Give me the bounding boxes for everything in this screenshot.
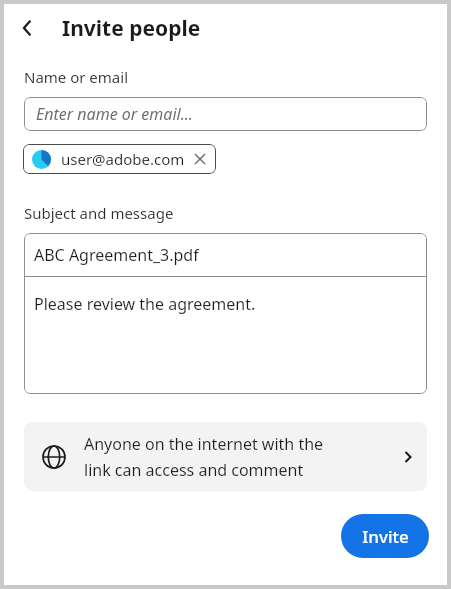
staticText: Enter name or email... bbox=[36, 103, 193, 125]
button[interactable]: Please review the agreement. bbox=[24, 277, 427, 394]
staticText: Invite bbox=[362, 525, 409, 548]
button[interactable]: user@adobe.com bbox=[23, 144, 216, 174]
button[interactable]: Back bbox=[10, 11, 44, 45]
button[interactable]: Enter name or email... bbox=[24, 97, 427, 131]
staticText: Anyone on the internet with the bbox=[84, 433, 324, 455]
button[interactable]: Anyone on the internet with the bbox=[24, 422, 427, 491]
button[interactable]: Invite bbox=[341, 514, 429, 558]
staticText: ABC Agreement_3.pdf bbox=[34, 244, 199, 266]
staticText: Invite people bbox=[62, 14, 201, 43]
button[interactable]: Remove user@adobe.com bbox=[193, 152, 207, 166]
staticText: user@adobe.com bbox=[61, 149, 185, 169]
staticText: Name or email bbox=[24, 67, 129, 87]
button[interactable]: ABC Agreement_3.pdf bbox=[24, 233, 427, 276]
staticText: Subject and message bbox=[24, 203, 174, 223]
staticText: link can access and comment bbox=[84, 459, 304, 481]
staticText: Please review the agreement. bbox=[34, 293, 256, 315]
